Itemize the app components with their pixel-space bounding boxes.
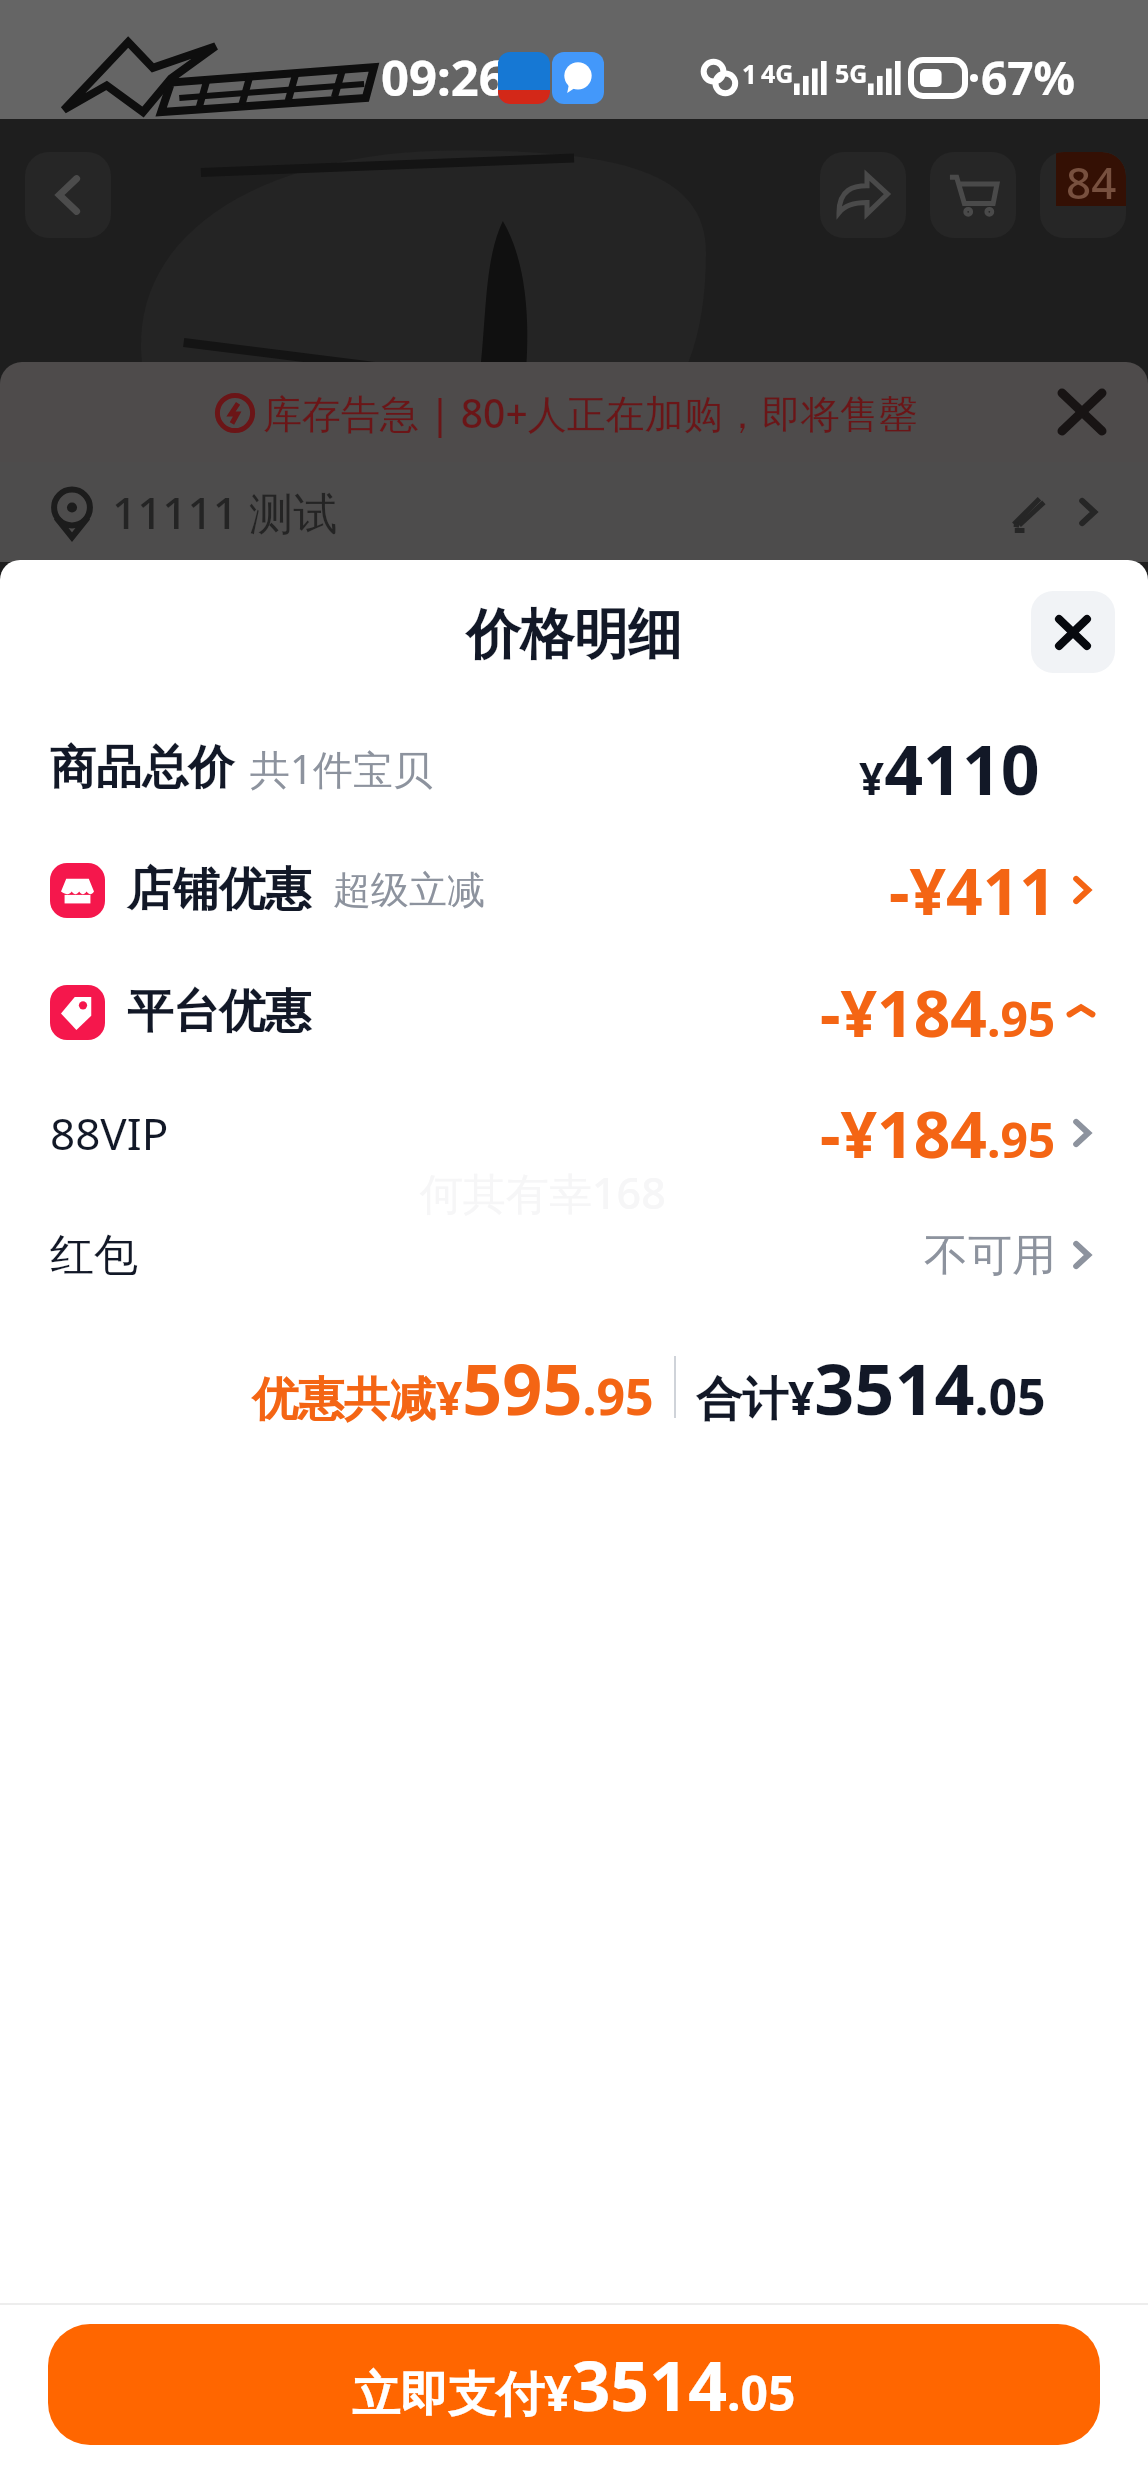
staticText: 立即支付¥3514.05	[352, 2338, 796, 2431]
button[interactable]: Close banner	[1044, 374, 1120, 450]
button[interactable]: Edit address	[1006, 490, 1102, 534]
staticText: 5G	[835, 56, 868, 90]
staticText: 超级立减	[333, 866, 485, 914]
staticText: ¥4110	[859, 722, 1040, 815]
staticText: 84	[1066, 152, 1117, 206]
button[interactable]: Cart	[930, 152, 1016, 238]
button[interactable]: 88VIP	[0, 1074, 1148, 1192]
staticText: 88VIP	[50, 1103, 169, 1163]
staticText: 11111 测试	[112, 482, 338, 542]
staticText: 优惠共减¥595.95	[252, 1340, 654, 1435]
button[interactable]: Close	[1031, 591, 1115, 673]
staticText: 红包	[50, 1228, 138, 1283]
staticText: 价格明细	[0, 601, 1148, 669]
staticText: 共1件宝贝	[250, 741, 433, 796]
staticText: 67%	[981, 46, 1076, 109]
staticText: 合计¥3514.05	[696, 1340, 1046, 1435]
staticText: 不可用	[924, 1228, 1056, 1283]
staticText: -¥184.95	[820, 969, 1056, 1056]
staticText: 商品总价	[50, 739, 234, 797]
staticText: 09:26	[381, 44, 507, 111]
staticText: 何其有幸168	[420, 1163, 666, 1222]
staticText: 平台优惠	[127, 983, 311, 1041]
button[interactable]: Back	[25, 152, 111, 238]
button[interactable]: Share	[820, 152, 906, 238]
button[interactable]: 立即支付¥3514.05	[48, 2324, 1100, 2445]
button[interactable]: 商品总价	[0, 709, 1148, 827]
staticText: 店铺优惠	[127, 861, 311, 919]
staticText: -¥411	[889, 847, 1056, 934]
button[interactable]: More	[1040, 152, 1126, 238]
staticText: 4G	[761, 56, 794, 90]
staticText: 库存告急 | 80+人正在加购，即将售罄	[263, 386, 918, 439]
button[interactable]: 平台优惠	[0, 953, 1148, 1071]
button[interactable]: 红包	[0, 1196, 1148, 1314]
button[interactable]: 店铺优惠	[0, 831, 1148, 949]
staticText: 1	[742, 56, 757, 91]
staticText: -¥184.95	[820, 1090, 1056, 1177]
